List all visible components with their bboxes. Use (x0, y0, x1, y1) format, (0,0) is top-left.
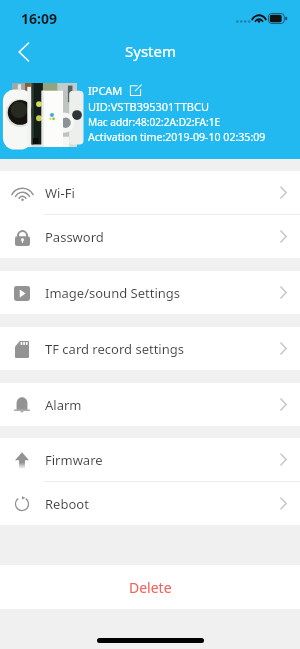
button[interactable]: Password (0, 215, 300, 258)
button[interactable]: Wi-Fi (0, 171, 300, 214)
button[interactable]: Image/sound Settings (0, 271, 300, 314)
staticText: System (125, 41, 176, 61)
button[interactable]: Edit name (129, 84, 142, 97)
button[interactable]: TF card record settings (0, 327, 300, 370)
button[interactable]: Reboot (0, 482, 300, 525)
staticText: TF card record settings (45, 340, 184, 358)
staticText: Delete (129, 578, 172, 597)
staticText: Image/sound Settings (45, 284, 181, 302)
button[interactable]: Delete (0, 565, 300, 609)
button[interactable]: Back (4, 36, 44, 68)
staticText: Password (45, 228, 104, 246)
staticText: IPCAM (88, 83, 123, 98)
staticText: Alarm (45, 396, 82, 414)
staticText: Firmware (45, 451, 103, 469)
staticText: Activation time:2019-09-10 02:35:09 (88, 130, 266, 144)
button[interactable]: Alarm (0, 383, 300, 426)
staticText: Reboot (45, 495, 89, 513)
staticText: UID:VSTB395301TTBCU (88, 99, 209, 114)
staticText: Wi-Fi (45, 184, 75, 202)
staticText: Mac addr:48:02:2A:D2:FA:1E (88, 115, 221, 129)
staticText: 16:09 (21, 9, 57, 28)
button[interactable]: Firmware (0, 438, 300, 481)
